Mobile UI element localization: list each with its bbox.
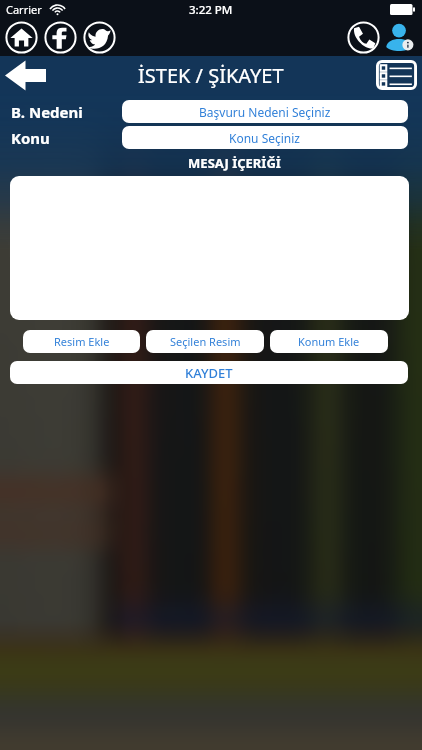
button[interactable]: [10, 176, 409, 320]
button[interactable]: Back: [5, 60, 46, 91]
button[interactable]: Home: [5, 21, 38, 54]
button[interactable]: Call: [347, 21, 380, 54]
staticText: Carrier: [6, 2, 42, 17]
staticText: Resim Ekle: [54, 334, 110, 349]
button[interactable]: Twitter: [83, 21, 116, 54]
button[interactable]: Account info: [382, 19, 419, 56]
staticText: Konu: [11, 128, 122, 148]
button[interactable]: Seçilen Resim: [146, 330, 264, 353]
staticText: B. Nedeni: [11, 102, 122, 122]
staticText: MESAJ İÇERİĞİ: [47, 154, 422, 172]
staticText: 3:22 PM: [189, 2, 233, 18]
staticText: Başvuru Nedeni Seçiniz: [199, 104, 331, 120]
staticText: KAYDET: [185, 364, 233, 382]
staticText: Konum Ekle: [298, 334, 360, 349]
staticText: Konu Seçiniz: [229, 130, 301, 146]
button[interactable]: Konum Ekle: [270, 330, 388, 353]
button[interactable]: Başvuru Nedeni Seçiniz: [122, 100, 408, 123]
button[interactable]: KAYDET: [10, 361, 408, 384]
button[interactable]: List: [376, 60, 417, 90]
staticText: İSTEK / ŞİKAYET: [138, 62, 284, 89]
staticText: Seçilen Resim: [170, 334, 241, 349]
button[interactable]: Resim Ekle: [23, 330, 140, 353]
button[interactable]: Konu Seçiniz: [122, 126, 408, 149]
button[interactable]: Facebook: [44, 21, 77, 54]
